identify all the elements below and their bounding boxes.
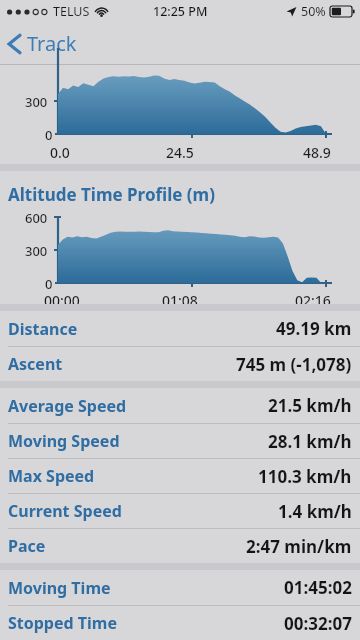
staticText: 00:00 [44,291,80,310]
staticText: TELUS [53,3,90,20]
staticText: Average Speed [8,395,127,417]
staticText: 21.5 km/h [268,394,352,417]
staticText: 28.1 km/h [268,430,352,453]
staticText: 01:45:02 [284,576,352,599]
button[interactable]: Moving Speed [0,424,360,458]
staticText: 2:47 min/km [246,535,352,558]
staticText: 48.9 [303,143,331,162]
staticText: 1.4 km/h [278,500,352,523]
button[interactable]: Pace [0,529,360,563]
staticText: Max Speed [8,465,95,487]
staticText: 300 [25,242,48,260]
staticText: Track [27,30,77,57]
staticText: 12:25 PM [153,3,208,20]
staticText: 49.19 km [276,317,352,340]
staticText: 745 m (-1,078) [236,353,352,376]
button[interactable]: Moving Time [0,570,360,605]
button[interactable]: Average Speed [0,388,360,423]
button[interactable]: Max Speed [0,459,360,493]
staticText: Current Speed [8,500,122,522]
button[interactable]: Ascent [0,347,360,381]
staticText: Distance [8,318,78,340]
staticText: 02:16 [295,291,331,310]
staticText: 00:32:07 [284,612,352,635]
button[interactable]: Distance [0,311,360,346]
staticText: 110.3 km/h [258,465,352,488]
staticText: 0 [45,126,53,144]
staticText: Moving Time [8,577,111,599]
staticText: 24.5 [166,143,194,162]
staticText: 01:08 [162,291,198,310]
button[interactable]: Stopped Time [0,606,360,640]
staticText: 300 [25,93,48,111]
staticText: Altitude Time Profile (m) [8,183,215,206]
staticText: 0.0 [50,143,70,162]
button[interactable]: Track [0,26,89,61]
button[interactable]: Current Speed [0,494,360,528]
staticText: 50% [301,3,326,20]
staticText: Ascent [8,353,63,375]
staticText: Moving Speed [8,430,120,452]
staticText: Pace [8,535,46,557]
staticText: 600 [25,209,48,227]
staticText: 0 [45,275,53,293]
staticText: Stopped Time [8,612,117,634]
